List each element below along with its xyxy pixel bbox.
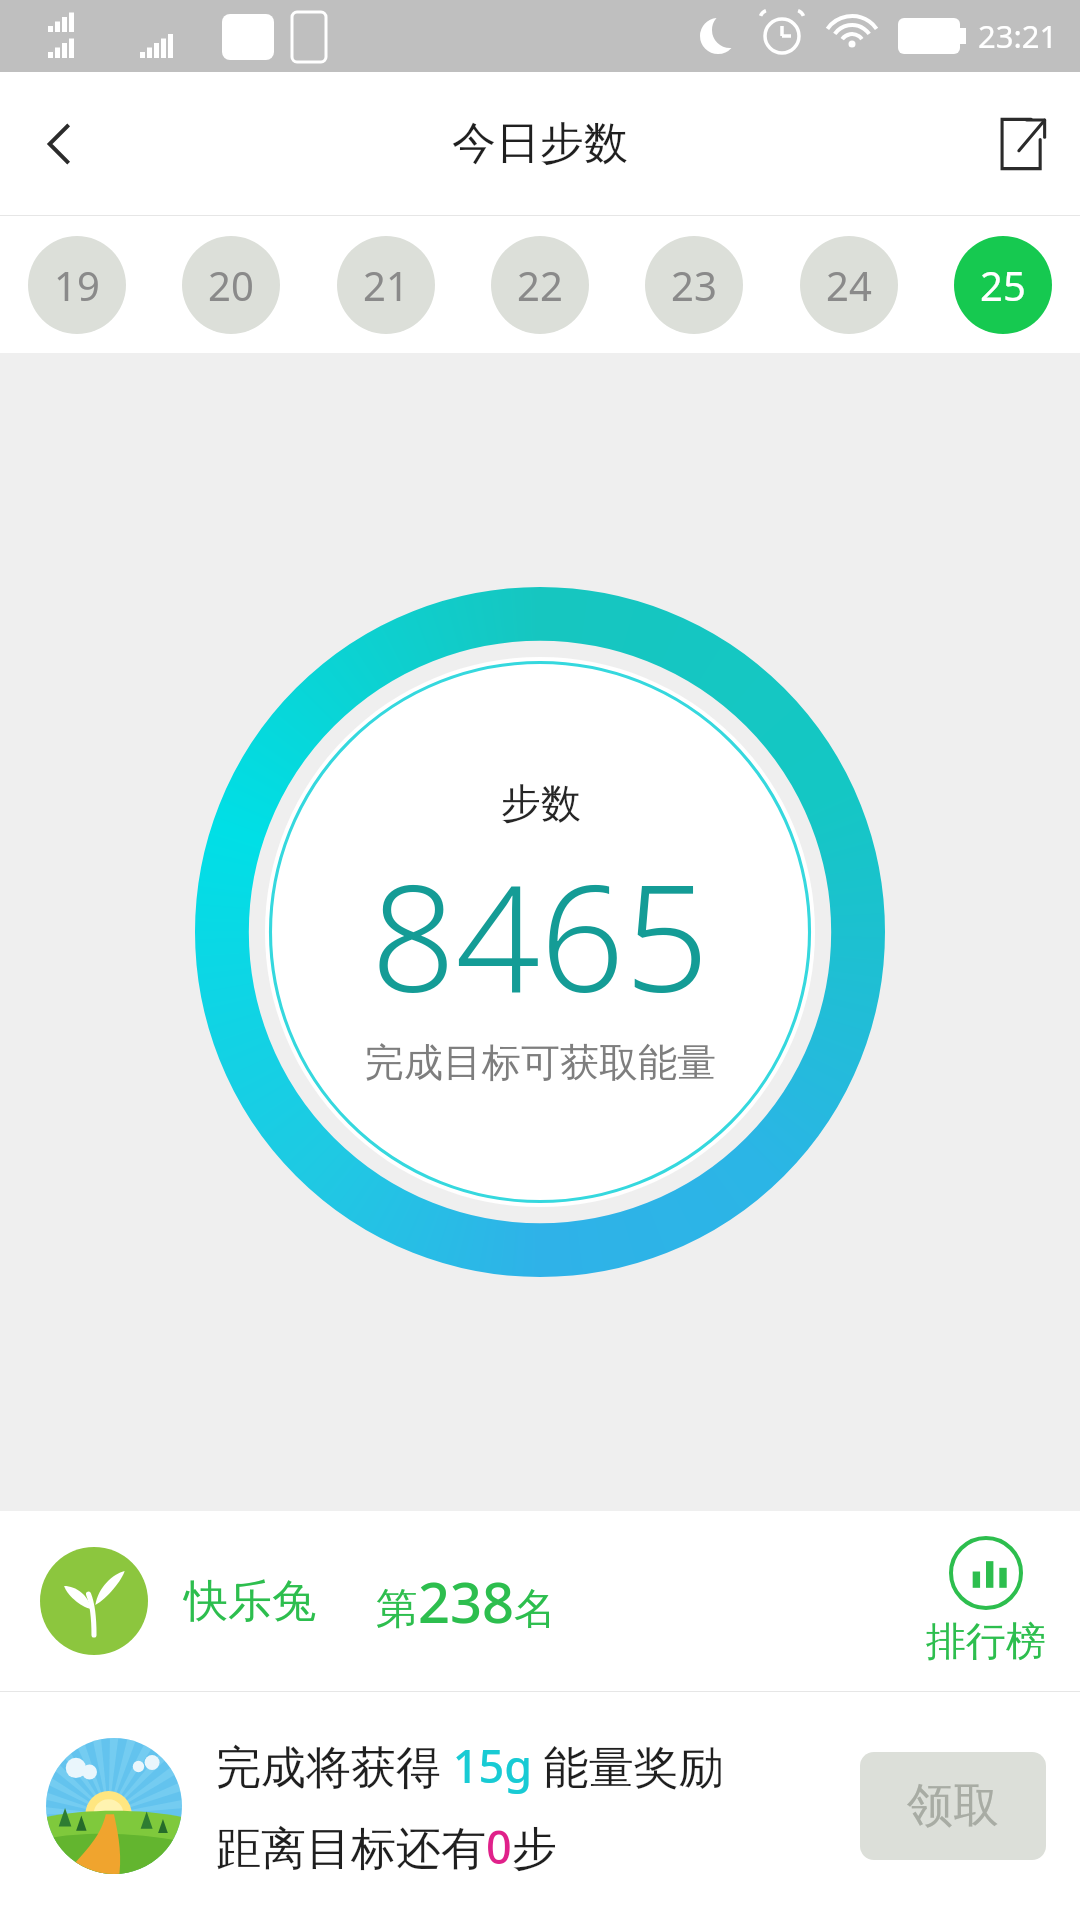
staticText: 19: [54, 258, 100, 312]
button[interactable]: 领取: [860, 1752, 1046, 1860]
button[interactable]: 25: [954, 236, 1052, 334]
button[interactable]: Back: [0, 84, 120, 204]
staticText: 完成将获得 15g 能量奖励: [216, 1735, 724, 1796]
button[interactable]: Share: [960, 84, 1080, 204]
staticText: 完成目标可获取能量: [365, 1038, 716, 1087]
staticText: 距离目标还有0步: [216, 1816, 557, 1877]
button[interactable]: 23: [645, 236, 743, 334]
staticText: 23: [671, 258, 717, 312]
staticText: 步数: [501, 778, 581, 828]
button[interactable]: 排行榜: [926, 1536, 1046, 1666]
staticText: 20: [208, 258, 254, 312]
button[interactable]: 20: [182, 236, 280, 334]
staticText: 今日步数: [452, 116, 628, 171]
button[interactable]: 24: [800, 236, 898, 334]
staticText: 排行榜: [926, 1616, 1046, 1666]
button[interactable]: 快乐兔: [0, 1511, 1080, 1691]
staticText: 第238名: [376, 1563, 557, 1639]
staticText: 25: [980, 258, 1026, 312]
staticText: 快乐兔: [184, 1574, 316, 1629]
staticText: 22: [517, 258, 563, 312]
staticText: 23:21: [978, 15, 1058, 57]
staticText: 领取: [907, 1777, 999, 1835]
staticText: 24: [826, 258, 872, 312]
staticText: 21: [363, 258, 409, 312]
button[interactable]: 19: [28, 236, 126, 334]
button[interactable]: 21: [337, 236, 435, 334]
button[interactable]: 22: [491, 236, 589, 334]
staticText: 8465: [371, 834, 710, 1036]
